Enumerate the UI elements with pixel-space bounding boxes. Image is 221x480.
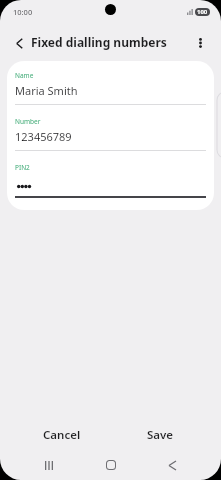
button[interactable]: Back [124,451,221,479]
button[interactable]: Name [15,61,206,107]
button[interactable]: PIN2 [15,153,206,199]
staticText: 100 [197,8,208,16]
button[interactable]: More options [187,30,213,56]
staticText: 10:00 [13,7,33,17]
staticText: Fixed dialling numbers [31,34,167,50]
staticText: Save [147,427,174,443]
button[interactable]: Number [15,107,206,153]
staticText: 123456789 [15,129,72,144]
button[interactable]: Recent apps [0,451,98,479]
button[interactable]: Save [124,418,196,452]
staticText: Name [15,71,34,80]
button[interactable]: Home [98,451,124,479]
staticText: Cancel [43,427,81,443]
button[interactable]: Back [6,30,32,56]
staticText: PIN2 [15,163,30,172]
staticText: Number [15,117,41,126]
staticText: Maria Smith [15,83,78,98]
button[interactable]: Cancel [0,418,124,452]
